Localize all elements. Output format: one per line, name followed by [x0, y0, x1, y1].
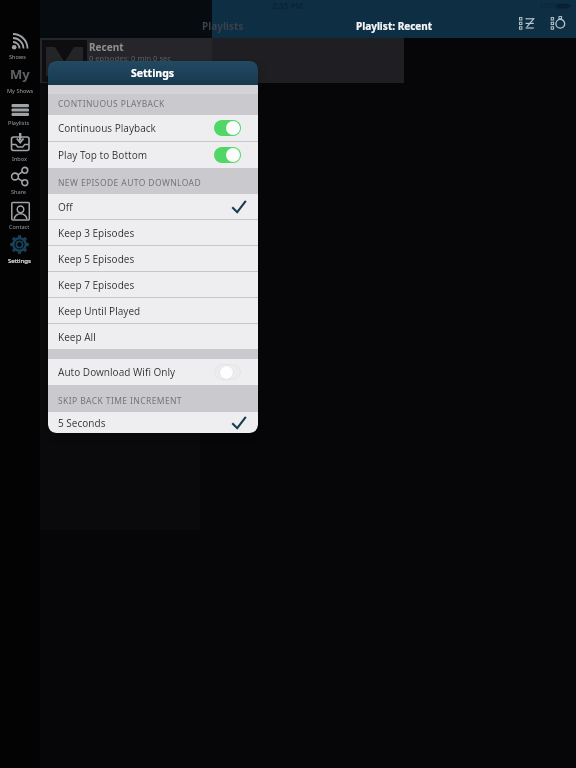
- staticText: SKIP BACK TIME INCREMENT: [58, 395, 182, 407]
- staticText: Keep Until Played: [58, 304, 141, 318]
- button[interactable]: [214, 120, 241, 136]
- staticText: My: [10, 65, 30, 83]
- staticText: My Shows: [7, 87, 34, 95]
- staticText: Settings: [8, 257, 31, 265]
- button[interactable]: [0, 30, 40, 62]
- button[interactable]: [0, 130, 40, 163]
- staticText: Contact: [9, 223, 30, 231]
- staticText: Playlists: [8, 119, 30, 127]
- button[interactable]: Off: [48, 194, 258, 219]
- button[interactable]: Keep 7 Episodes: [48, 272, 258, 297]
- button[interactable]: [0, 232, 40, 265]
- staticText: Share: [11, 188, 27, 196]
- button[interactable]: Keep 5 Episodes: [48, 246, 258, 271]
- button[interactable]: Keep 3 Episodes: [48, 220, 258, 245]
- staticText: Off: [58, 200, 73, 214]
- staticText: Shows: [9, 53, 26, 61]
- staticText: Recent: [89, 40, 124, 54]
- staticText: 0 episodes: 0 min 0 sec: [89, 53, 171, 63]
- button[interactable]: [0, 164, 40, 196]
- button[interactable]: [0, 62, 40, 93]
- button[interactable]: [0, 199, 40, 230]
- staticText: Continuous Playback: [58, 121, 156, 135]
- staticText: 5 Seconds: [58, 416, 106, 430]
- button[interactable]: Keep Until Played: [48, 298, 258, 323]
- button[interactable]: Keep All: [48, 324, 258, 349]
- button[interactable]: [0, 98, 40, 128]
- staticText: Keep All: [58, 330, 96, 344]
- staticText: 100%: [540, 1, 557, 10]
- button[interactable]: Continuous Playback: [48, 115, 258, 141]
- button[interactable]: Auto Download Wifi Only: [48, 359, 258, 385]
- staticText: Keep 7 Episodes: [58, 278, 135, 292]
- button[interactable]: [514, 12, 540, 36]
- button[interactable]: [214, 147, 241, 163]
- button[interactable]: 5 Seconds: [48, 412, 258, 433]
- staticText: CONTINUOUS PLAYBACK: [58, 98, 165, 110]
- staticText: Keep 3 Episodes: [58, 226, 135, 240]
- button[interactable]: [40, 38, 212, 83]
- button[interactable]: [214, 364, 241, 380]
- staticText: NEW EPISODE AUTO DOWNLOAD: [58, 177, 202, 189]
- button[interactable]: Play Top to Bottom: [48, 142, 258, 168]
- staticText: Inbox: [12, 155, 28, 163]
- staticText: Play Top to Bottom: [58, 148, 148, 162]
- staticText: Playlists: [202, 19, 244, 33]
- button[interactable]: [546, 12, 570, 36]
- staticText: Auto Download Wifi Only: [58, 365, 176, 379]
- staticText: Keep 5 Episodes: [58, 252, 135, 266]
- staticText: 2:35 PM: [272, 0, 304, 11]
- staticText: Settings: [131, 66, 175, 80]
- staticText: Playlist: Recent: [356, 19, 433, 33]
